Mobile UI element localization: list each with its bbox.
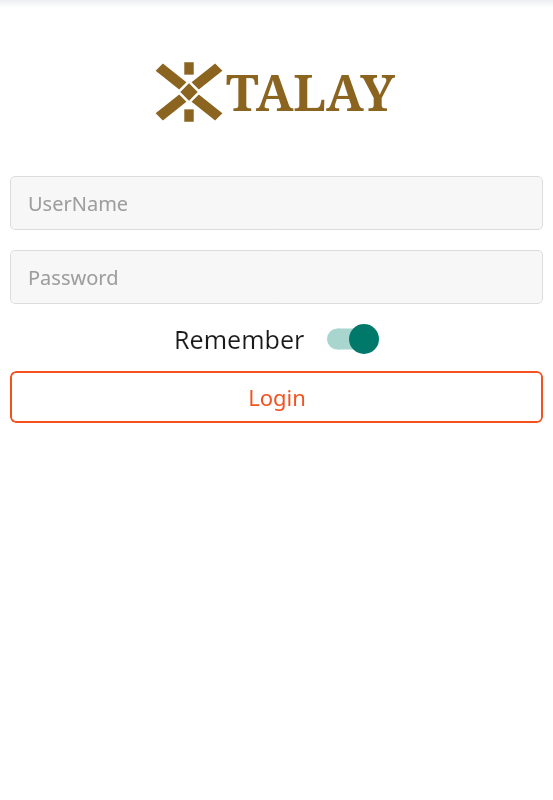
staticText: Password	[28, 264, 119, 291]
staticText: UserName	[28, 190, 129, 217]
staticText: Login	[248, 382, 306, 412]
button[interactable]: UserName	[10, 176, 543, 230]
button[interactable]: Remember me toggle, on	[327, 324, 379, 354]
staticText: Remember	[174, 322, 305, 356]
staticText: TALAY	[226, 58, 395, 126]
button[interactable]: Password	[10, 250, 543, 304]
button[interactable]: Login	[10, 371, 543, 423]
